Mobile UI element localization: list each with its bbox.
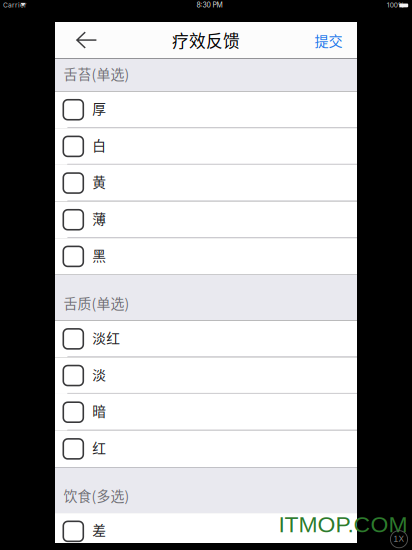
- staticText: 100%: [387, 1, 405, 9]
- staticText: 黑: [92, 245, 106, 265]
- button[interactable]: 差: [55, 513, 357, 550]
- staticText: 8:30 PM: [196, 1, 222, 9]
- staticText: 白: [92, 135, 106, 155]
- staticText: 饮食(多选): [63, 485, 129, 505]
- button[interactable]: 提交: [314, 22, 357, 58]
- staticText: 暗: [92, 401, 106, 421]
- button[interactable]: 淡: [55, 357, 357, 394]
- button[interactable]: 淡红: [55, 321, 357, 357]
- staticText: 薄: [92, 208, 106, 228]
- staticText: 1X: [393, 534, 404, 543]
- button[interactable]: 白: [55, 128, 357, 165]
- button[interactable]: 厚: [55, 91, 357, 128]
- staticText: 厚: [92, 98, 106, 118]
- staticText: 差: [92, 520, 106, 540]
- staticText: 疗效反馈: [172, 28, 240, 52]
- button[interactable]: 黄: [55, 165, 357, 201]
- staticText: 红: [92, 437, 106, 457]
- staticText: 黄: [92, 171, 106, 191]
- button[interactable]: 暗: [55, 394, 357, 431]
- button[interactable]: 薄: [55, 201, 357, 238]
- staticText: 舌苔(单选): [63, 63, 129, 84]
- staticText: 舌质(单选): [63, 293, 129, 313]
- button[interactable]: 红: [55, 431, 357, 467]
- staticText: 淡: [92, 364, 106, 384]
- staticText: ITMOP.COM: [279, 512, 408, 537]
- button[interactable]: Back: [55, 22, 107, 58]
- staticText: 淡红: [92, 327, 120, 347]
- staticText: 提交: [314, 30, 342, 50]
- staticText: Carrier: [3, 1, 27, 9]
- button[interactable]: 黑: [55, 238, 357, 275]
